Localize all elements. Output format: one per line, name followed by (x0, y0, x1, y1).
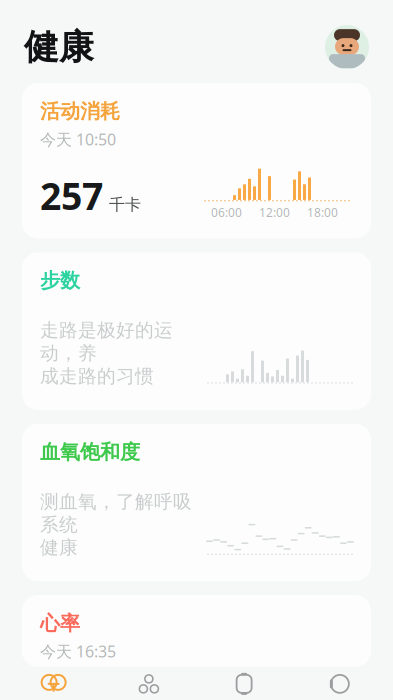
button[interactable]: 表盘 (196, 666, 292, 700)
button[interactable]: 步数 (22, 252, 371, 410)
button[interactable]: 血氧饱和度 (22, 424, 371, 581)
button[interactable]: 健康 (6, 666, 101, 700)
staticText: 06:00 (211, 204, 242, 220)
staticText: 18:00 (307, 204, 338, 220)
button[interactable]: 心率 (22, 595, 371, 667)
button[interactable]: 个人资料 (325, 25, 369, 69)
button[interactable]: 活动消耗 (22, 83, 371, 238)
staticText: 走路是极好的运动，养 成走路的习惯 (40, 319, 173, 388)
staticText: 12:00 (259, 204, 290, 220)
staticText: 测血氧，了解呼吸系统 健康 (40, 490, 192, 559)
button[interactable]: 健身记录 (101, 666, 196, 700)
staticText: 今天 10:50 (40, 129, 116, 150)
staticText: 活动消耗 (40, 99, 120, 124)
staticText: 257 (40, 171, 103, 220)
button[interactable]: 设备 (292, 666, 387, 700)
staticText: 心率 (40, 611, 80, 636)
staticText: 今天 16:35 (40, 641, 116, 662)
staticText: 健康 (24, 26, 94, 68)
staticText: 千卡 (109, 195, 141, 215)
staticText: 步数 (40, 268, 80, 293)
staticText: 血氧饱和度 (40, 440, 140, 464)
